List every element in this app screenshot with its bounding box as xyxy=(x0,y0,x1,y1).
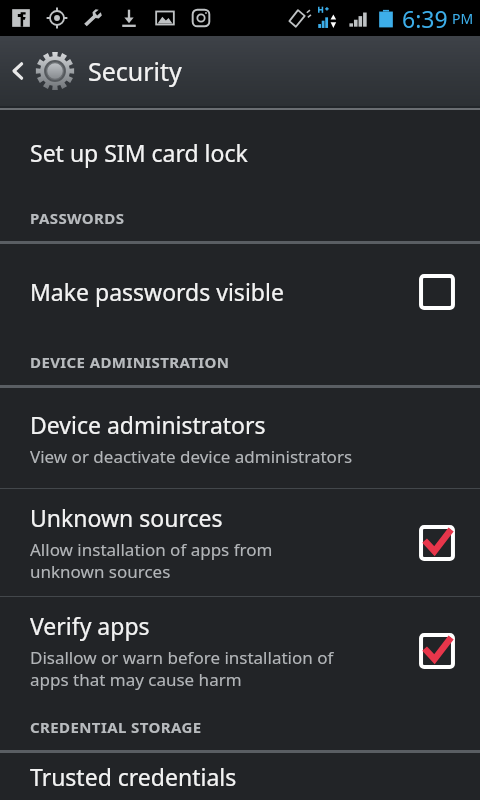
button[interactable]: Set up SIM card lock xyxy=(0,110,480,195)
button[interactable]: Make passwords visible xyxy=(0,244,480,339)
button[interactable]: Navigate up, Security xyxy=(0,44,198,98)
staticText: PM xyxy=(452,9,474,28)
staticText: 6:39 xyxy=(402,3,448,34)
staticText: Trusted credentials xyxy=(30,761,237,792)
staticText: Unknown sources xyxy=(30,502,223,533)
button[interactable]: Trusted credentials xyxy=(0,753,480,800)
staticText: Make passwords visible xyxy=(30,276,284,307)
staticText: Disallow or warn before installation of … xyxy=(30,646,334,691)
staticText: DEVICE ADMINISTRATION xyxy=(30,352,230,372)
button[interactable]: Device administrators xyxy=(0,388,480,488)
staticText: Set up SIM card lock xyxy=(30,137,248,168)
staticText: Allow installation of apps from unknown … xyxy=(30,538,273,583)
staticText: Verify apps xyxy=(30,610,150,641)
button[interactable]: Unknown sources xyxy=(0,489,480,596)
button[interactable]: Verify apps xyxy=(0,597,480,704)
staticText: View or deactivate device administrators xyxy=(30,445,353,468)
staticText: Device administrators xyxy=(30,409,266,440)
staticText: CREDENTIAL STORAGE xyxy=(30,717,202,737)
staticText: PASSWORDS xyxy=(30,208,125,228)
staticText: Security xyxy=(88,54,182,88)
